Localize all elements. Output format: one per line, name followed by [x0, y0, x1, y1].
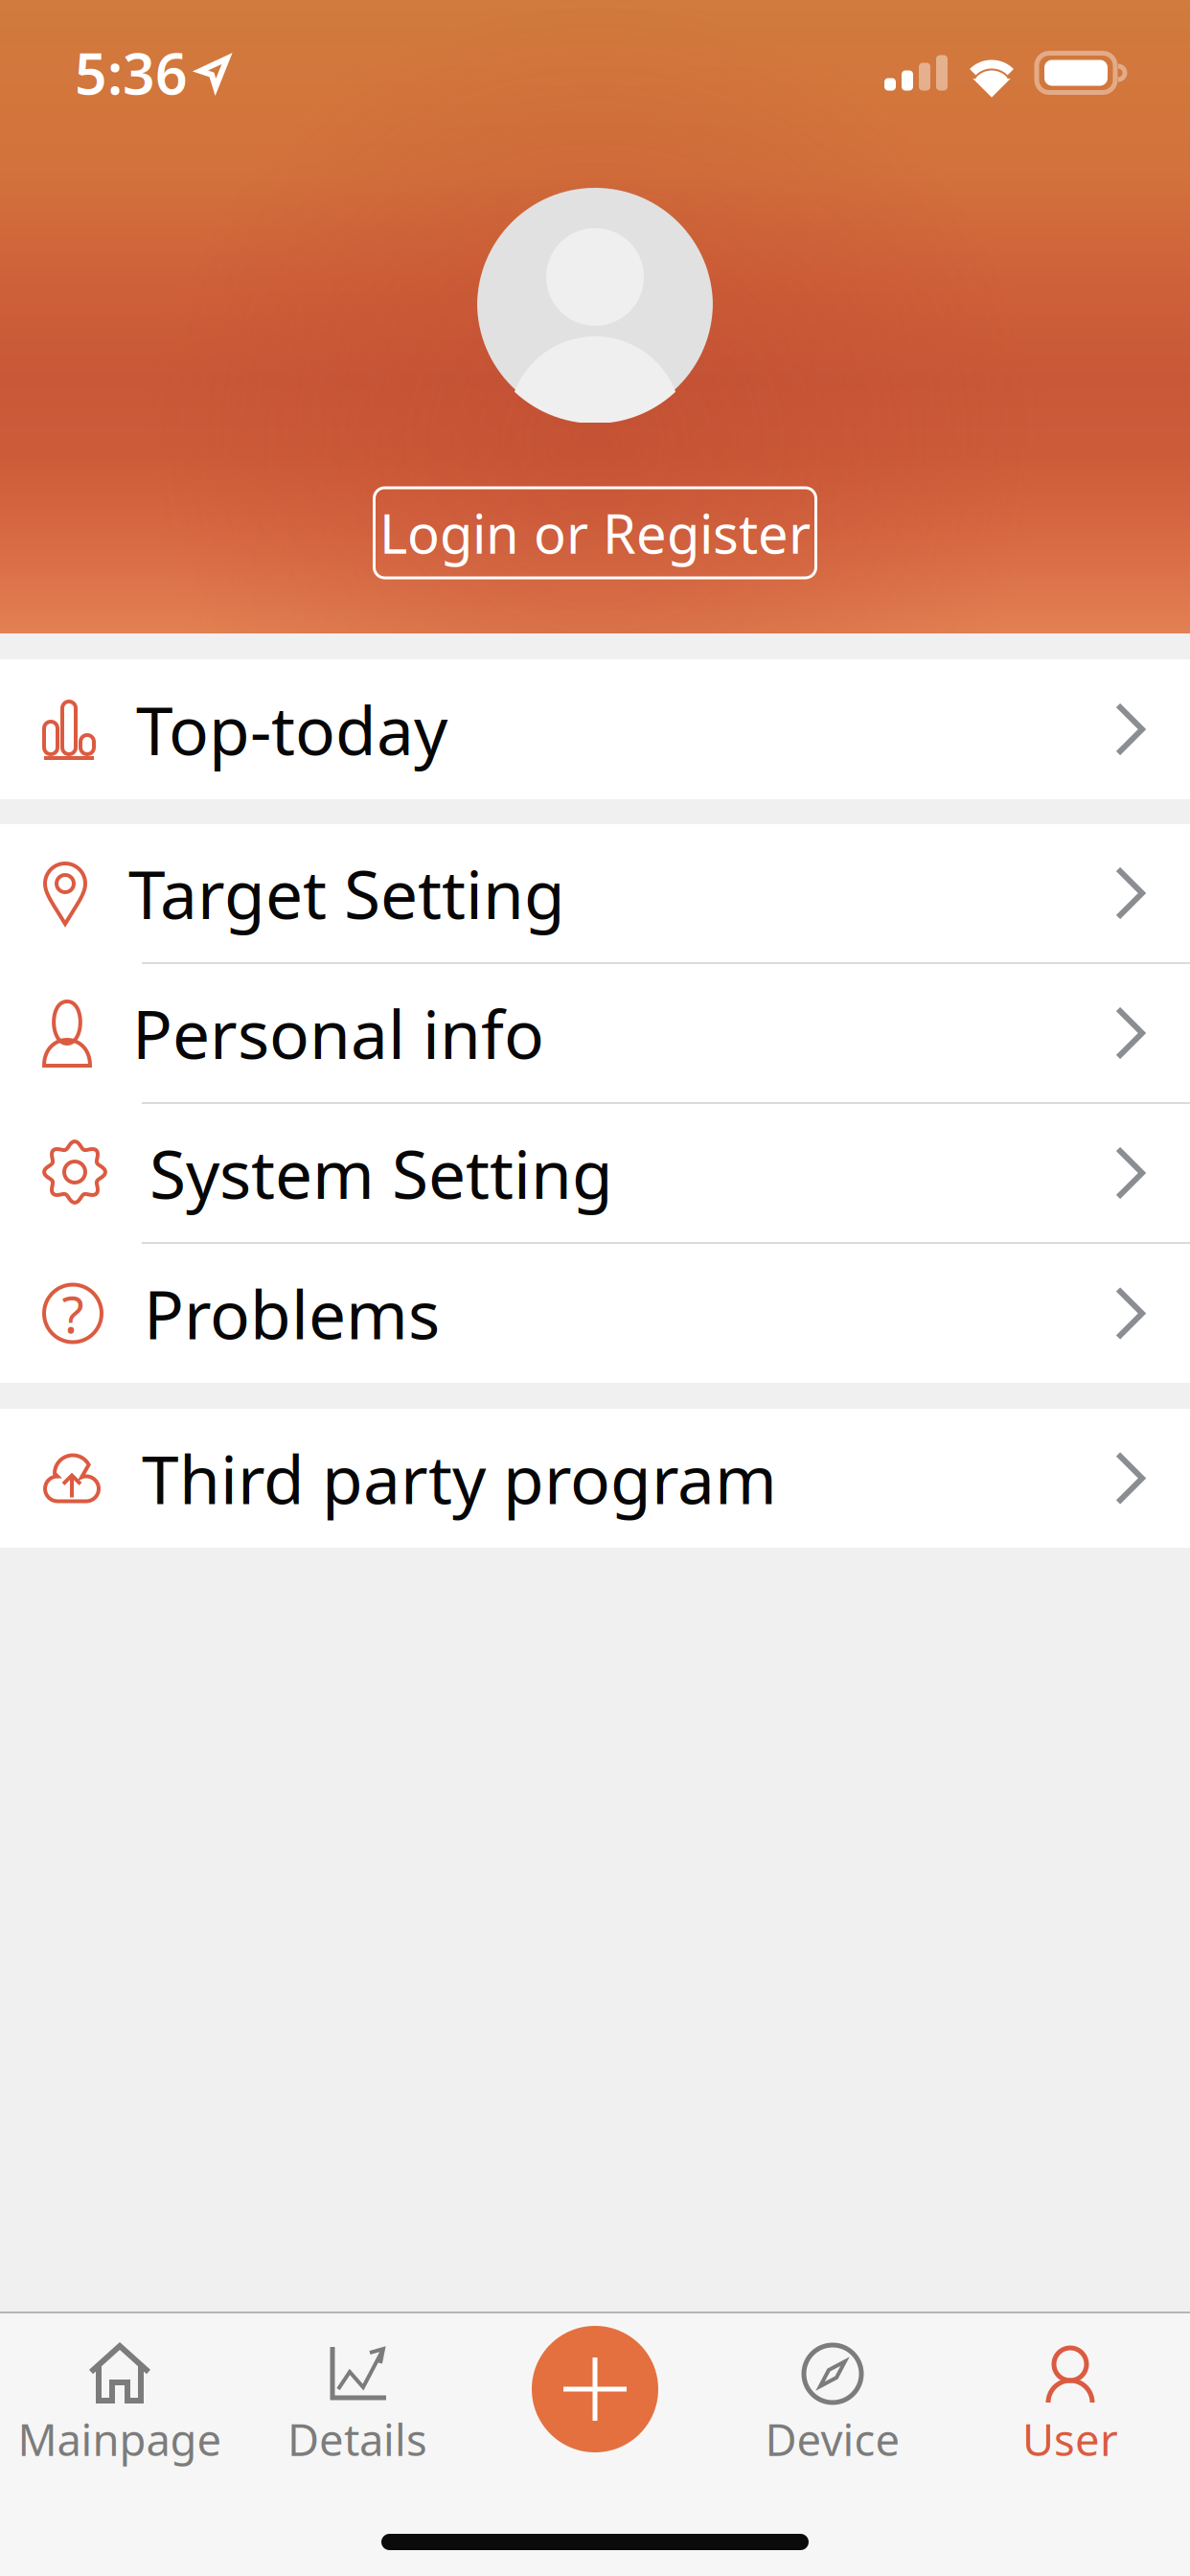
- button[interactable]: Add: [532, 2326, 658, 2452]
- button[interactable]: System Setting: [0, 1104, 1190, 1242]
- button[interactable]: Third party program: [0, 1409, 1190, 1548]
- button[interactable]: Mainpage: [1, 2313, 239, 2476]
- staticText: Target Setting: [128, 849, 565, 937]
- staticText: User: [1022, 2410, 1118, 2468]
- staticText: ?: [62, 1279, 84, 1347]
- button[interactable]: User: [951, 2313, 1189, 2476]
- button[interactable]: Target Setting: [0, 824, 1190, 962]
- staticText: Device: [765, 2410, 900, 2468]
- staticText: Problems: [144, 1269, 440, 1358]
- button[interactable]: Top-today: [0, 659, 1190, 799]
- staticText: Mainpage: [18, 2410, 222, 2468]
- staticText: Top-today: [136, 685, 447, 773]
- staticText: Third party program: [142, 1434, 777, 1522]
- button[interactable]: Login or Register: [374, 488, 816, 578]
- staticText: Personal info: [132, 989, 544, 1077]
- button[interactable]: Details: [239, 2313, 476, 2476]
- staticText: Details: [287, 2410, 427, 2468]
- staticText: System Setting: [149, 1129, 613, 1217]
- staticText: 5:36: [75, 35, 188, 110]
- button[interactable]: Personal info: [0, 964, 1190, 1102]
- button[interactable]: ?: [0, 1244, 1190, 1383]
- button[interactable]: Device: [714, 2313, 951, 2476]
- staticText: Login or Register: [379, 497, 811, 568]
